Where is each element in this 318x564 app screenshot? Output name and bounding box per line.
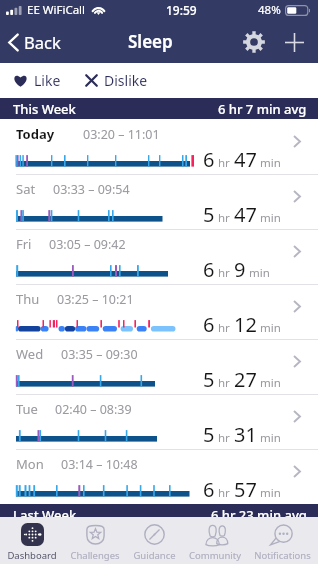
staticText: Today [16, 125, 55, 143]
staticText: Thu [16, 290, 40, 308]
staticText: 6 [203, 146, 215, 173]
staticText: Wed [16, 345, 44, 363]
staticText: EE WiFiCall [27, 2, 86, 18]
staticText: hr [218, 210, 230, 226]
staticText: 47 [234, 146, 257, 173]
staticText: 03:14 – 10:48 [61, 456, 138, 473]
button[interactable]: Tue [0, 394, 318, 449]
staticText: Community [189, 549, 241, 562]
staticText: Fri [16, 235, 32, 253]
staticText: 9 [234, 256, 246, 283]
staticText: 6 [203, 311, 215, 338]
staticText: 12 [234, 311, 257, 338]
staticText: Notifications [254, 549, 311, 562]
staticText: hr [218, 320, 230, 336]
staticText: Mon [16, 455, 44, 473]
staticText: 03:35 – 09:30 [61, 346, 138, 363]
staticText: Dashboard [7, 549, 57, 562]
staticText: hr [218, 485, 230, 501]
staticText: 02:40 – 08:39 [55, 401, 132, 418]
staticText: Guidance [133, 549, 176, 562]
button[interactable]: Back [6, 26, 63, 58]
staticText: 27 [234, 366, 257, 393]
button[interactable]: Today [0, 119, 318, 174]
staticText: Back [24, 31, 61, 53]
staticText: 57 [234, 476, 257, 503]
button[interactable]: Notifications [253, 522, 312, 562]
staticText: 6 hr 7 min avg [218, 100, 307, 118]
button[interactable]: Dislike [83, 66, 150, 95]
staticText: 6 [203, 256, 215, 283]
staticText: 03:25 – 10:21 [57, 291, 134, 308]
staticText: Last Week [13, 506, 77, 524]
staticText: 5 [203, 366, 215, 393]
button[interactable]: Challenges [69, 522, 121, 562]
staticText: Sleep [128, 30, 173, 53]
staticText: min [260, 155, 281, 171]
button[interactable]: Wed [0, 339, 318, 394]
staticText: Challenges [70, 549, 120, 562]
staticText: min [260, 210, 281, 226]
staticText: hr [218, 265, 230, 281]
button[interactable]: Sat [0, 174, 318, 229]
button[interactable]: Add [278, 26, 310, 58]
staticText: 03:05 – 09:42 [49, 236, 126, 253]
button[interactable]: Dashboard [6, 522, 58, 562]
staticText: 48% [258, 2, 281, 18]
staticText: 03:20 – 11:01 [83, 126, 160, 143]
staticText: 6 hr 23 min avg [211, 506, 307, 524]
button[interactable]: Guidance [132, 522, 177, 562]
button[interactable]: Thu [0, 284, 318, 339]
button[interactable]: Like [11, 66, 63, 95]
staticText: 5 [203, 421, 215, 448]
button[interactable]: Mon [0, 449, 318, 504]
staticText: 5 [203, 201, 215, 228]
staticText: This Week [13, 100, 76, 118]
staticText: hr [218, 155, 230, 171]
staticText: 31 [234, 421, 257, 448]
button[interactable]: Fri [0, 229, 318, 284]
button[interactable]: Settings [238, 26, 270, 58]
staticText: min [260, 320, 281, 336]
staticText: Dislike [104, 71, 148, 90]
staticText: min [249, 265, 270, 281]
staticText: Like [34, 71, 61, 90]
staticText: min [260, 485, 281, 501]
staticText: 19:59 [166, 2, 197, 18]
staticText: 6 [203, 476, 215, 503]
staticText: min [260, 375, 281, 391]
staticText: Tue [16, 400, 38, 418]
staticText: 47 [234, 201, 257, 228]
staticText: hr [218, 430, 230, 446]
staticText: hr [218, 375, 230, 391]
button[interactable]: Community [188, 522, 242, 562]
staticText: Sat [16, 180, 36, 198]
staticText: min [260, 430, 281, 446]
staticText: 03:33 – 09:54 [53, 181, 130, 198]
